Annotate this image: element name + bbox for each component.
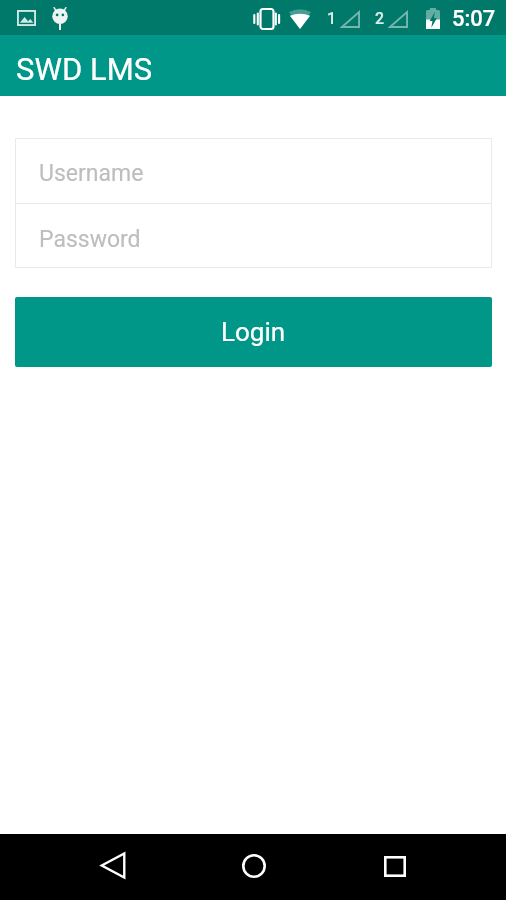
staticText: Login (221, 317, 286, 347)
staticText: 2 (375, 9, 385, 28)
staticText: 5:07 (452, 6, 496, 32)
button[interactable]: Back (89, 841, 137, 889)
staticText: 1 (327, 9, 337, 28)
button[interactable]: Recents (371, 842, 419, 890)
staticText: Password (39, 226, 141, 253)
button[interactable]: Username (15, 138, 492, 203)
button[interactable]: Home (230, 842, 278, 890)
staticText: Username (39, 160, 144, 187)
staticText: SWD LMS (16, 51, 153, 87)
button[interactable]: Login (15, 297, 492, 367)
button[interactable]: Password (15, 204, 492, 268)
